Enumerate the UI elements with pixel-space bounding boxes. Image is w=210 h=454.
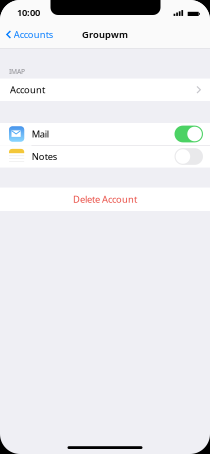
button[interactable]: Account <box>0 78 210 101</box>
staticText: Mail <box>32 128 49 140</box>
staticText: Accounts <box>14 28 53 41</box>
staticText: IMAP <box>9 67 25 76</box>
button[interactable]: Delete Account <box>0 187 210 211</box>
staticText: Delete Account <box>73 193 137 205</box>
staticText: 10:00 <box>17 6 40 19</box>
staticText: Notes <box>32 150 57 163</box>
button[interactable]: Notes <box>0 145 210 167</box>
staticText: Groupwm <box>82 28 128 41</box>
button[interactable]: Mail <box>0 123 210 145</box>
button[interactable]: Accounts <box>2 24 57 45</box>
staticText: Account <box>10 84 45 96</box>
